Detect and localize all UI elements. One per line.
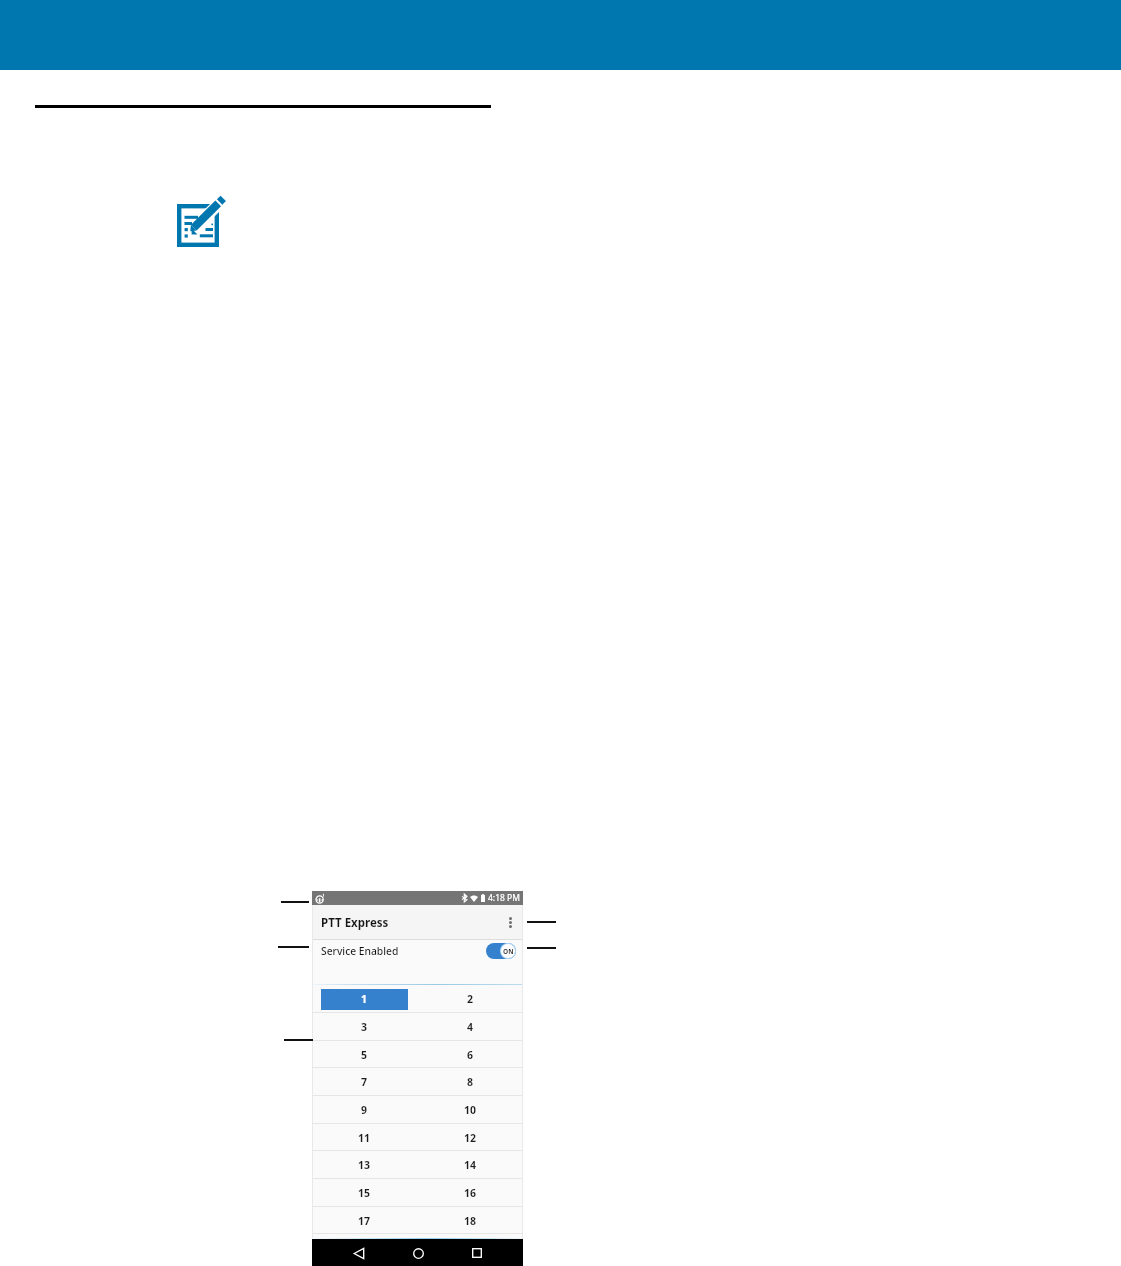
staticText: 5 (361, 1048, 368, 1062)
button[interactable]: 12 (417, 1124, 523, 1151)
staticText: ON (503, 947, 514, 956)
button[interactable]: 1 (312, 985, 417, 1012)
staticText: 11 (358, 1131, 371, 1145)
button[interactable]: Service Enabled toggle (486, 943, 516, 959)
button[interactable]: Home (408, 1243, 428, 1263)
staticText: 4 (467, 1020, 474, 1034)
staticText: PTT Express (321, 915, 389, 931)
staticText: 6 (467, 1048, 474, 1062)
button[interactable]: 18 (417, 1207, 523, 1234)
staticText: 1 (361, 992, 368, 1006)
button[interactable]: 5 (312, 1041, 417, 1068)
button[interactable]: 11 (312, 1124, 417, 1151)
button[interactable]: Recents (467, 1243, 487, 1263)
staticText: 2 (467, 992, 474, 1006)
staticText: 13 (358, 1158, 371, 1172)
staticText: 18 (464, 1214, 477, 1228)
button[interactable]: 6 (417, 1041, 523, 1068)
staticText: 10 (464, 1103, 477, 1117)
button[interactable]: 9 (312, 1096, 417, 1123)
staticText: 15 (358, 1186, 371, 1200)
staticText: Service Enabled (321, 944, 399, 958)
staticText: 4:18 PM (488, 892, 520, 904)
button[interactable]: 13 (312, 1151, 417, 1178)
button[interactable]: 10 (417, 1096, 523, 1123)
button[interactable]: Service Enabled (312, 940, 523, 987)
button[interactable]: 4 (417, 1013, 523, 1040)
staticText: 9 (361, 1103, 368, 1117)
button[interactable]: PTT Express (312, 905, 523, 939)
staticText: 7 (361, 1075, 368, 1089)
staticText: 16 (464, 1186, 477, 1200)
button[interactable]: 15 (312, 1179, 417, 1206)
button[interactable]: More options (501, 913, 519, 931)
button[interactable]: 17 (312, 1207, 417, 1234)
staticText: 17 (358, 1214, 371, 1228)
staticText: 14 (464, 1158, 477, 1172)
button[interactable]: 14 (417, 1151, 523, 1178)
button[interactable]: 3 (312, 1013, 417, 1040)
button[interactable]: 2 (417, 985, 523, 1012)
staticText: 12 (464, 1131, 477, 1145)
button[interactable]: 7 (312, 1068, 417, 1095)
staticText: 8 (467, 1075, 474, 1089)
staticText: 3 (361, 1020, 368, 1034)
button[interactable]: 8 (417, 1068, 523, 1095)
button[interactable]: 16 (417, 1179, 523, 1206)
button[interactable]: Back (349, 1243, 369, 1263)
